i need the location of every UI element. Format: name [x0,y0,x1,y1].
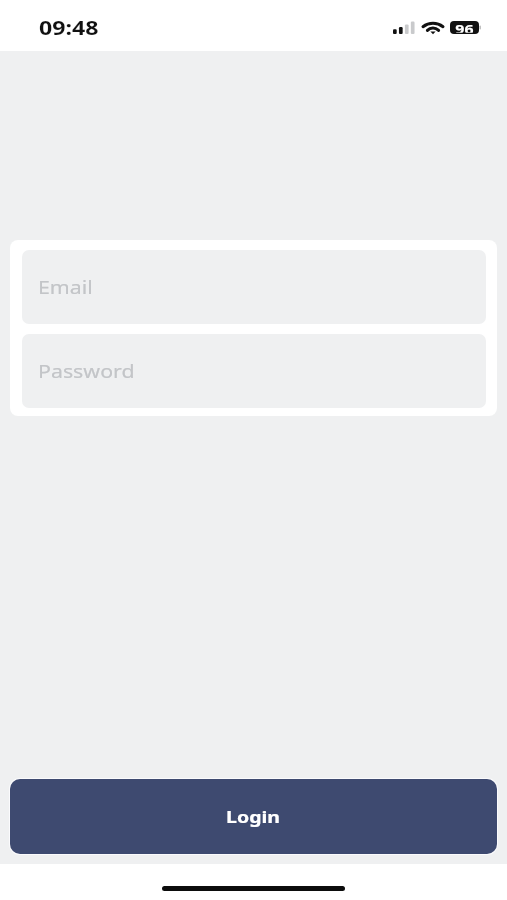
button[interactable]: Password [22,334,486,408]
staticText: Password [38,359,136,383]
other: Cellular signal [393,21,415,34]
other: Battery 96 percent [450,21,482,34]
staticText: 96 [455,20,474,33]
other: Wi-Fi [422,20,444,34]
staticText: Login [226,806,281,828]
button[interactable]: Email [22,250,486,324]
staticText: Email [38,275,93,299]
button[interactable]: Login [10,779,497,854]
staticText: 09:48 [39,15,99,41]
